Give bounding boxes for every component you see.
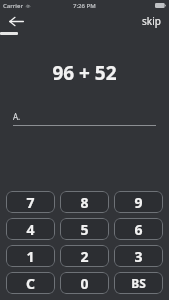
staticText: C [26,274,35,293]
button[interactable]: BS [114,272,163,294]
button[interactable]: 5 [60,218,109,240]
button[interactable]: Back [7,12,25,30]
staticText: 5 [80,220,89,239]
staticText: BS [131,275,146,291]
button[interactable]: 9 [114,191,163,213]
staticText: 7:26 PM [73,2,96,10]
staticText: 7 [26,193,35,212]
button[interactable]: 7 [6,191,55,213]
staticText: 4 [26,220,35,239]
staticText: 9 [134,193,143,212]
button[interactable]: 4 [6,218,55,240]
button[interactable]: 2 [60,245,109,267]
staticText: 96 + 52 [52,60,117,86]
button[interactable]: 8 [60,191,109,213]
staticText: 3 [134,247,143,266]
button[interactable]: C [6,272,55,294]
button[interactable]: 1 [6,245,55,267]
button[interactable]: skip [140,12,163,30]
staticText: 1 [26,247,35,266]
staticText: A. [13,111,21,122]
button[interactable]: 6 [114,218,163,240]
staticText: Carrier [3,2,23,10]
staticText: 2 [80,247,89,266]
button[interactable]: A. [13,111,156,126]
staticText: skip [142,14,161,28]
button[interactable]: 0 [60,272,109,294]
staticText: 8 [80,193,89,212]
button[interactable]: 3 [114,245,163,267]
staticText: 0 [80,274,89,293]
staticText: 6 [134,220,143,239]
